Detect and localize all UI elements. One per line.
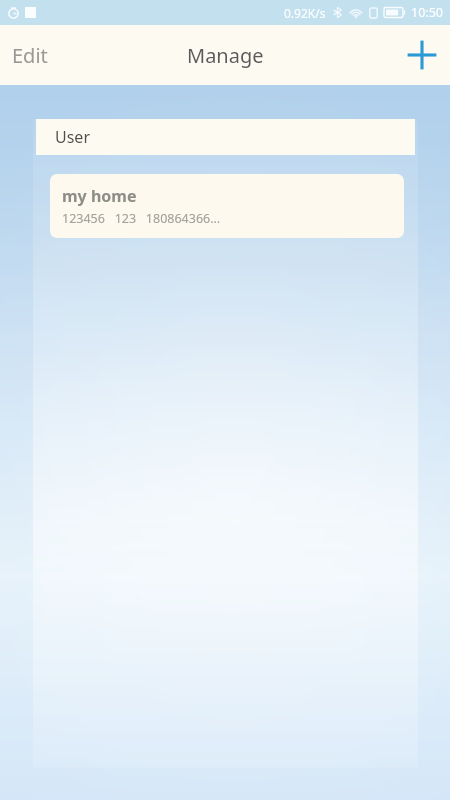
- button[interactable]: User: [36, 119, 415, 155]
- staticText: 10:50: [411, 4, 443, 21]
- button[interactable]: my home: [50, 174, 404, 238]
- button[interactable]: Add: [394, 27, 450, 83]
- staticText: 123456 123 180864366…: [62, 210, 221, 227]
- staticText: 0.92K/s: [284, 5, 326, 21]
- button[interactable]: Edit: [0, 25, 90, 85]
- staticText: Edit: [12, 42, 48, 69]
- staticText: Manage: [187, 42, 264, 69]
- staticText: User: [55, 126, 90, 148]
- staticText: my home: [62, 185, 137, 207]
